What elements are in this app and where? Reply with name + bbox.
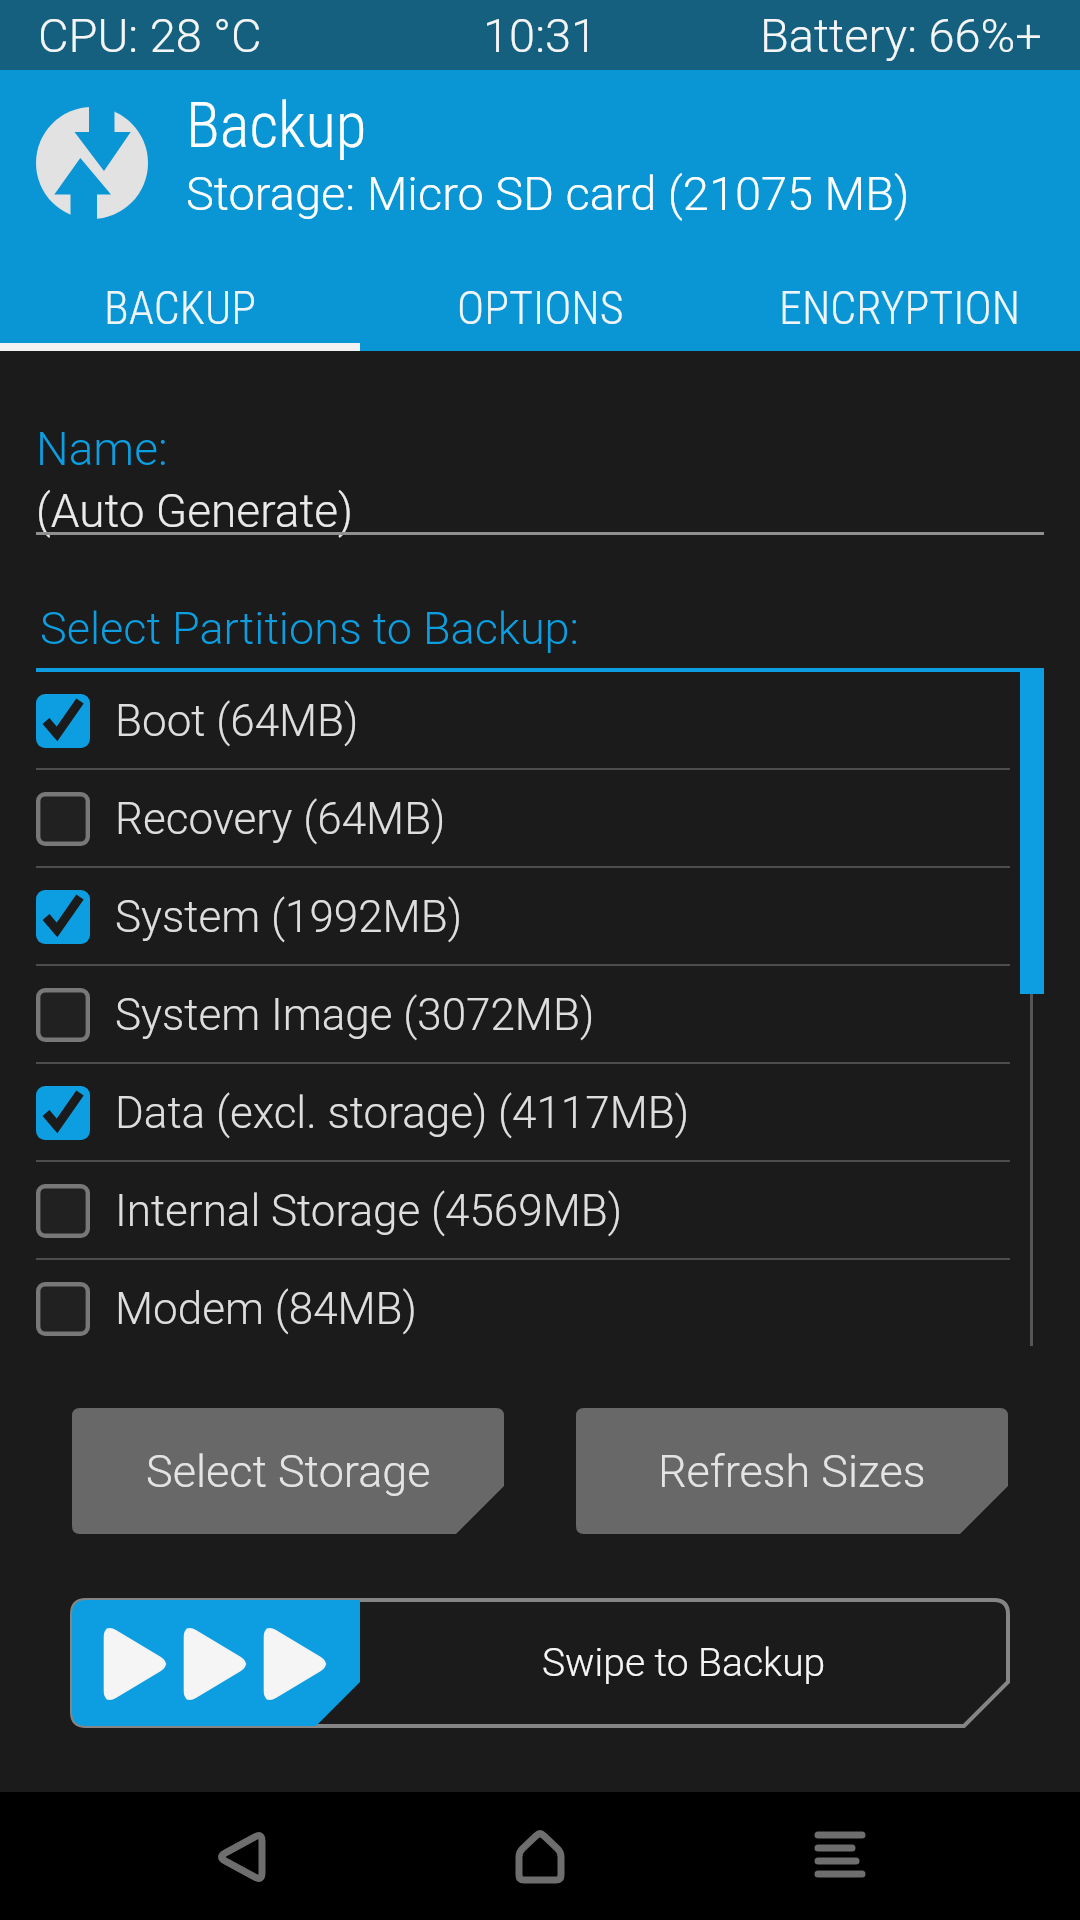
button[interactable]: Recovery (64MB) (0, 770, 1014, 868)
staticText: 10:31 (483, 8, 598, 63)
staticText: System (1992MB) (115, 891, 462, 943)
staticText: BACKUP (104, 281, 256, 335)
staticText: Storage: Micro SD card (21075 MB) (186, 166, 910, 221)
staticText: (Auto Generate) (36, 484, 353, 538)
button[interactable]: System (1992MB) (0, 868, 1014, 966)
staticText: Recovery (64MB) (115, 793, 446, 845)
staticText: Swipe to Backup (542, 1640, 826, 1686)
button[interactable]: Data (excl. storage) (4117MB) (0, 1064, 1014, 1162)
staticText: Internal Storage (4569MB) (115, 1185, 623, 1237)
button[interactable]: Select Storage (72, 1408, 504, 1534)
staticText: Backup (186, 89, 367, 163)
button[interactable] (496, 1830, 584, 1900)
button[interactable]: Boot (64MB) (0, 672, 1014, 770)
button[interactable]: BACKUP (0, 268, 360, 348)
button[interactable]: System Image (3072MB) (0, 966, 1014, 1064)
staticText: Boot (64MB) (115, 695, 359, 747)
staticText: Select Partitions to Backup: (40, 602, 580, 655)
staticText: Refresh Sizes (658, 1445, 926, 1498)
button[interactable] (196, 1833, 284, 1901)
staticText: Data (excl. storage) (4117MB) (115, 1087, 690, 1139)
button[interactable]: ENCRYPTION (720, 268, 1080, 348)
button[interactable] (796, 1828, 884, 1900)
staticText: ENCRYPTION (779, 281, 1021, 335)
button[interactable]: Internal Storage (4569MB) (0, 1162, 1014, 1260)
staticText: Battery: 66%+ (760, 8, 1042, 63)
staticText: Modem (84MB) (115, 1283, 417, 1335)
staticText: OPTIONS (457, 281, 624, 335)
staticText: CPU: 28 °C (38, 8, 262, 63)
staticText: System Image (3072MB) (115, 989, 595, 1041)
button[interactable]: OPTIONS (360, 268, 720, 348)
button[interactable]: Refresh Sizes (576, 1408, 1008, 1534)
staticText: Name: (36, 422, 168, 476)
button[interactable]: Swipe to Backup (72, 1600, 1008, 1726)
button[interactable]: Modem (84MB) (0, 1260, 1014, 1358)
staticText: Select Storage (146, 1445, 431, 1498)
